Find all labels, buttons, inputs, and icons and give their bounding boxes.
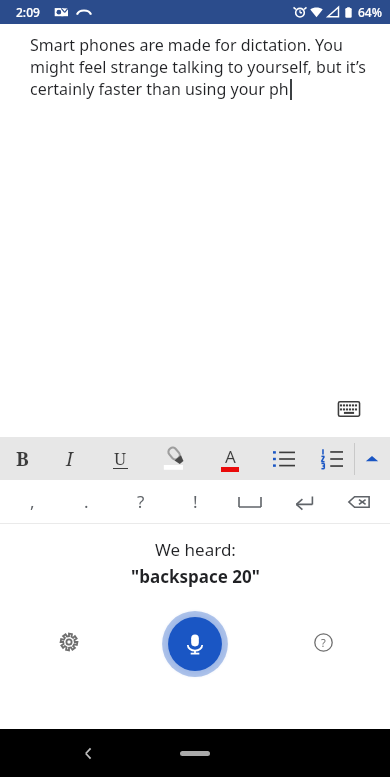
staticText: certainly faster than using your ph (30, 78, 289, 100)
button[interactable]: Show keyboard (325, 385, 373, 433)
staticText: 2:09 (16, 4, 40, 20)
staticText: ? (321, 635, 326, 650)
button[interactable]: . (63, 480, 109, 523)
staticText: U (114, 447, 127, 470)
button[interactable]: Bulleted list (258, 437, 309, 480)
button[interactable]: Home (165, 738, 225, 768)
button[interactable]: Help (308, 627, 338, 657)
staticText: "backspace 20" (131, 565, 260, 588)
button[interactable]: Microphone (160, 609, 230, 679)
staticText: . (84, 490, 89, 513)
staticText: ! (193, 490, 198, 513)
button[interactable]: Numbered list (309, 437, 354, 480)
button[interactable]: Italic (44, 437, 95, 480)
staticText: A (225, 445, 236, 468)
button[interactable]: Underline (95, 437, 146, 480)
staticText: B (16, 446, 29, 472)
button[interactable]: Question mark (118, 480, 164, 523)
button[interactable]: Backspace (336, 480, 382, 523)
button[interactable]: Text color (202, 437, 258, 480)
staticText: I (66, 446, 73, 472)
staticText: , (30, 490, 35, 513)
button[interactable]: Back (70, 735, 106, 771)
button[interactable]: , (9, 480, 55, 523)
staticText: ? (137, 490, 145, 513)
button[interactable]: Enter (281, 480, 327, 523)
button[interactable]: Bold (0, 437, 44, 480)
button[interactable]: Highlight (146, 437, 202, 480)
staticText: might feel strange talking to yourself, … (30, 56, 366, 78)
staticText: 64% (358, 4, 382, 20)
staticText: We heard: (155, 538, 236, 561)
button[interactable]: Settings (54, 627, 84, 657)
staticText: Smart phones are made for dictation. You (30, 34, 343, 56)
button[interactable]: Collapse toolbar (355, 437, 389, 480)
button[interactable]: Exclamation mark (172, 480, 218, 523)
button[interactable]: Space (227, 480, 273, 523)
